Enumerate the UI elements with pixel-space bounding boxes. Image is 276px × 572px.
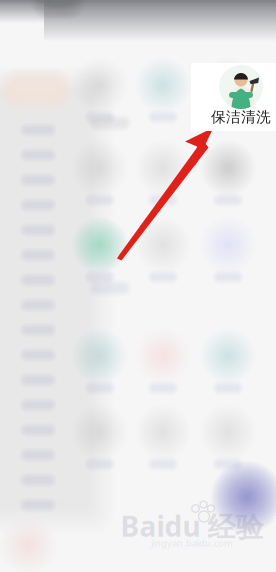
staticText: 保洁清洗 <box>211 108 271 126</box>
staticText: Baidu 经验 <box>120 507 263 545</box>
staticText: jingyan.baidu.com <box>151 537 233 549</box>
button[interactable]: 保洁清洗 <box>191 63 276 131</box>
